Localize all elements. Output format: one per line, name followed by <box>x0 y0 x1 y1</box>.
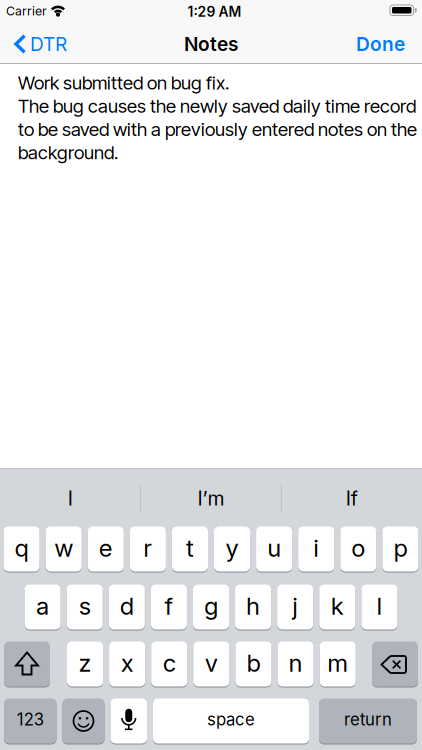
staticText: h <box>246 591 260 620</box>
button[interactable]: w <box>46 526 82 571</box>
staticText: n <box>289 648 303 677</box>
staticText: b <box>246 648 260 677</box>
button[interactable]: Emoji <box>62 698 104 743</box>
button[interactable]: Delete <box>372 641 418 686</box>
staticText: q <box>15 533 29 562</box>
staticText: u <box>267 533 281 562</box>
staticText: I <box>68 487 73 510</box>
button[interactable]: c <box>151 641 187 686</box>
staticText: t <box>186 533 194 562</box>
staticText: v <box>205 648 218 677</box>
button[interactable]: l <box>361 584 397 629</box>
staticText: p <box>393 533 407 562</box>
button[interactable]: k <box>319 584 355 629</box>
staticText: m <box>327 648 348 677</box>
staticText: l <box>376 591 382 620</box>
staticText: j <box>292 591 298 620</box>
staticText: The bug causes the newly saved daily tim… <box>18 95 416 117</box>
button[interactable]: space <box>153 698 309 743</box>
button[interactable]: m <box>320 641 356 686</box>
staticText: a <box>36 591 49 620</box>
staticText: Notes <box>184 32 238 56</box>
staticText: z <box>78 648 91 677</box>
button[interactable]: v <box>193 641 229 686</box>
staticText: e <box>99 533 113 562</box>
button[interactable]: j <box>277 584 313 629</box>
button[interactable]: o <box>340 526 376 571</box>
button[interactable]: s <box>67 584 103 629</box>
staticText: i <box>313 533 319 562</box>
button[interactable]: Back <box>11 29 69 59</box>
button[interactable]: e <box>88 526 124 571</box>
button[interactable]: n <box>277 641 314 686</box>
staticText: g <box>204 591 218 620</box>
button[interactable]: I’m <box>142 470 280 526</box>
button[interactable]: z <box>67 641 103 686</box>
button[interactable]: Shift <box>4 641 50 686</box>
button[interactable]: f <box>151 584 187 629</box>
staticText: 123 <box>17 709 44 730</box>
staticText: space <box>207 709 255 730</box>
button[interactable]: i <box>298 526 334 571</box>
staticText: Work submitted on bug fix. <box>18 71 229 94</box>
button[interactable]: 123 <box>4 698 56 743</box>
button[interactable]: h <box>235 584 271 629</box>
staticText: c <box>163 648 176 677</box>
button[interactable]: d <box>109 584 145 629</box>
staticText: DTR <box>30 32 67 56</box>
staticText: s <box>79 591 91 620</box>
staticText: If <box>346 487 358 510</box>
button[interactable]: If <box>283 470 421 526</box>
staticText: Carrier <box>6 4 47 18</box>
staticText: background. <box>18 141 118 164</box>
button[interactable]: I <box>1 470 139 526</box>
button[interactable]: b <box>235 641 271 686</box>
staticText: y <box>226 533 239 562</box>
button[interactable]: r <box>130 526 166 571</box>
staticText: I’m <box>197 487 224 510</box>
button[interactable]: q <box>3 526 40 571</box>
staticText: k <box>331 591 344 620</box>
button[interactable]: g <box>193 584 229 629</box>
staticText: x <box>121 648 134 677</box>
button[interactable]: Done <box>353 29 407 59</box>
staticText: to be saved with a previously entered no… <box>18 118 417 140</box>
button[interactable]: t <box>172 526 208 571</box>
staticText: f <box>164 591 173 620</box>
staticText: 1:29 AM <box>187 3 241 20</box>
button[interactable]: p <box>382 526 418 571</box>
staticText: d <box>120 591 134 620</box>
button[interactable]: a <box>25 584 61 629</box>
button[interactable]: x <box>109 641 145 686</box>
staticText: w <box>54 533 73 562</box>
staticText: r <box>143 533 152 562</box>
button[interactable]: Dictate <box>110 698 147 743</box>
button[interactable]: return <box>319 698 417 743</box>
staticText: Done <box>356 32 405 56</box>
button[interactable]: u <box>256 526 292 571</box>
staticText: return <box>344 709 392 730</box>
staticText: o <box>351 533 365 562</box>
button[interactable]: y <box>214 526 250 571</box>
